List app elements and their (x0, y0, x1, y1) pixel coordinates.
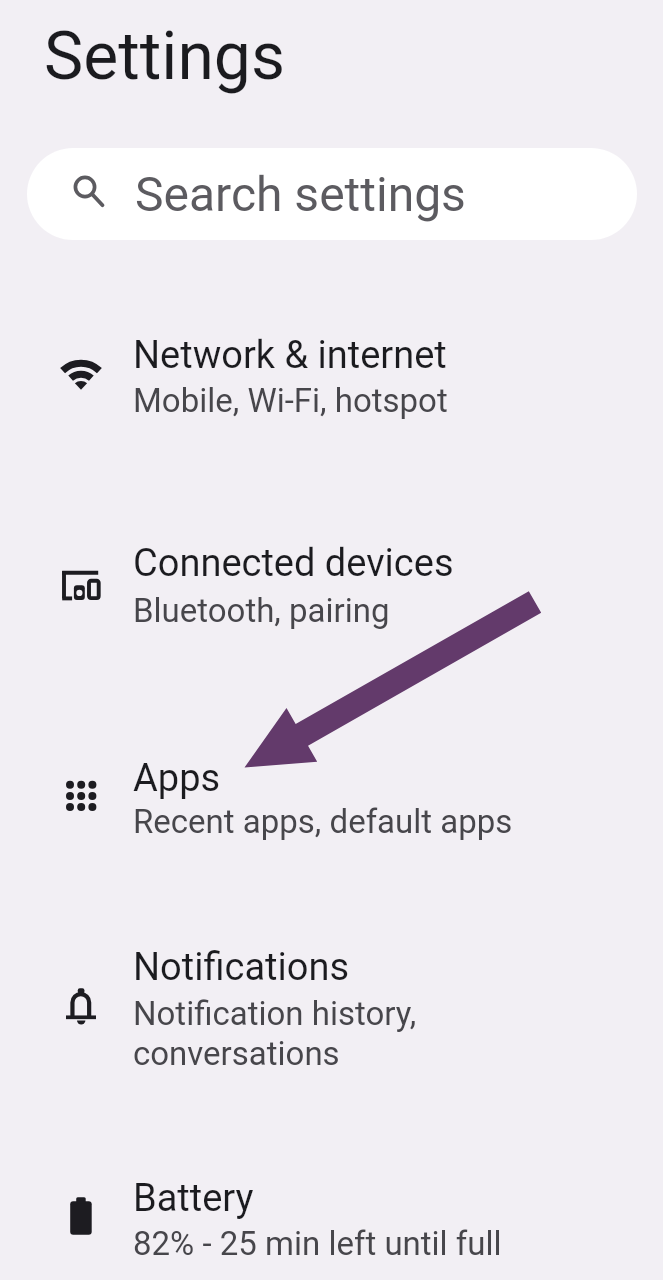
staticText: Settings (44, 18, 285, 95)
staticText: Apps (133, 756, 221, 801)
staticText: Network & internet (133, 333, 447, 378)
staticText: Notification history, conversations (133, 994, 417, 1073)
staticText: Notifications (133, 945, 350, 990)
staticText: Search settings (135, 166, 466, 222)
staticText: Battery (133, 1176, 254, 1221)
button[interactable]: Apps (0, 750, 663, 860)
staticText: Connected devices (133, 541, 454, 586)
button[interactable]: Notifications (0, 938, 663, 1088)
button[interactable]: Search settings (27, 148, 637, 240)
button[interactable]: Battery (0, 1170, 663, 1280)
staticText: Recent apps, default apps (133, 802, 513, 841)
button[interactable]: Connected devices (0, 536, 663, 646)
staticText: Mobile, Wi-Fi, hotspot (133, 381, 448, 420)
button[interactable]: Network & internet (0, 326, 663, 436)
staticText: Bluetooth, pairing (133, 591, 390, 630)
staticText: 82% - 25 min left until full (133, 1224, 502, 1263)
